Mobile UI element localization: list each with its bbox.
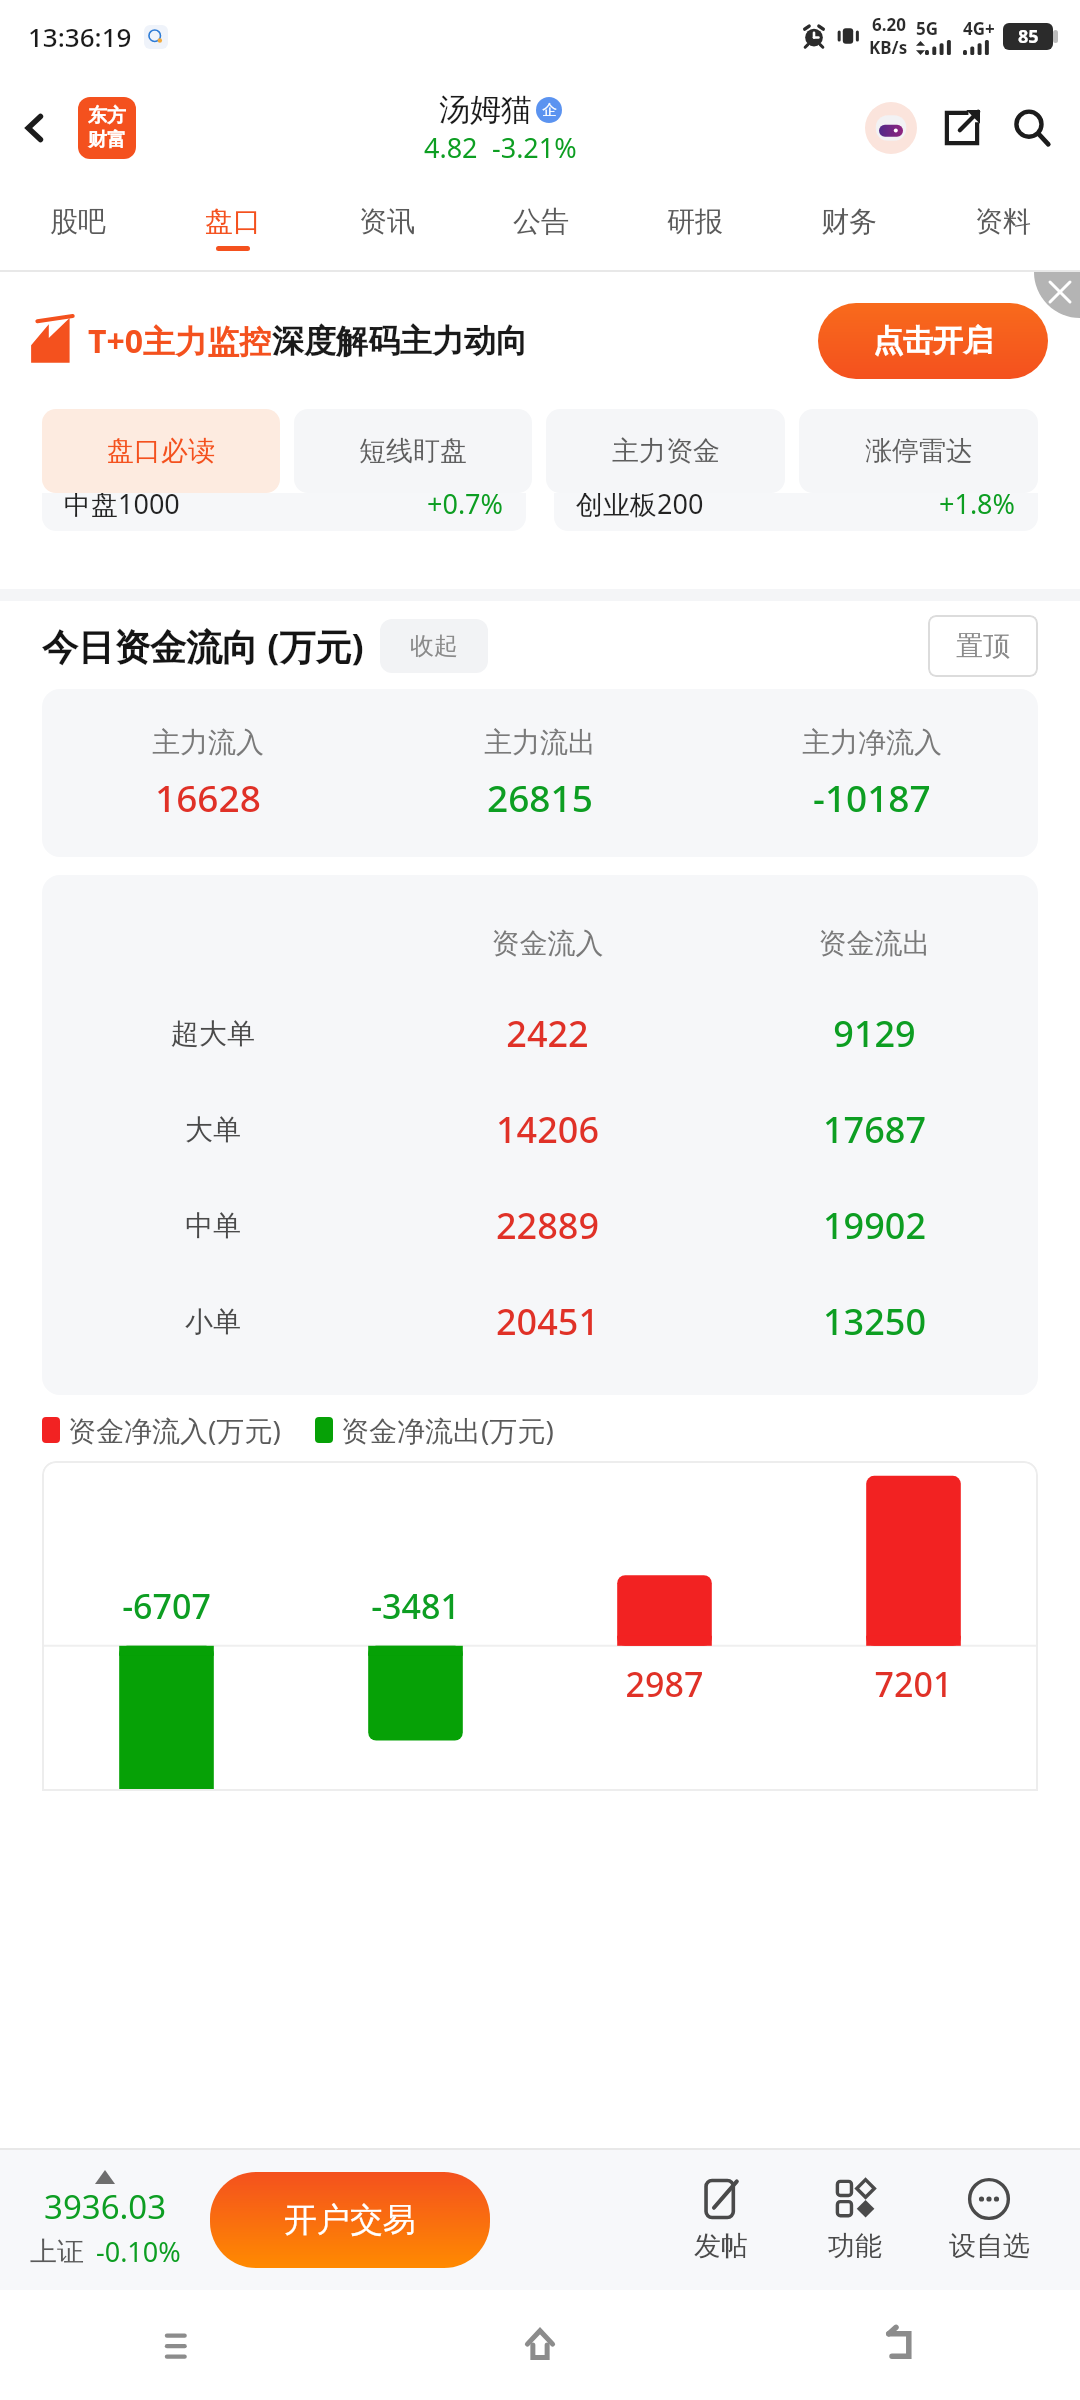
staticText: 财富 — [88, 128, 126, 152]
staticText: 3936.03 — [44, 2184, 167, 2229]
staticText: 4G+ — [963, 17, 995, 40]
button[interactable]: 点击开启 — [818, 303, 1048, 379]
staticText: 盘口必读 — [107, 434, 215, 468]
staticText: +0.7% — [427, 493, 504, 522]
button[interactable]: Home — [360, 2290, 720, 2400]
button[interactable]: Back — [720, 2290, 1080, 2400]
button[interactable]: 小单 — [42, 1273, 1038, 1369]
staticText: -3481 — [291, 1583, 540, 1629]
staticText: 主力流出 — [484, 725, 596, 760]
staticText: 小单 — [42, 1304, 384, 1339]
button[interactable]: 公告 — [464, 184, 618, 270]
staticText: 今日资金流向 (万元) — [42, 622, 364, 671]
staticText: 7201 — [789, 1661, 1038, 1707]
staticText: 盘口 — [205, 204, 261, 239]
staticText: 22889 — [384, 1201, 711, 1250]
staticText: 研报 — [667, 204, 723, 239]
button[interactable]: T+0主力监控 — [0, 272, 1080, 409]
staticText: 开户交易 — [284, 2199, 416, 2241]
staticText: 2987 — [540, 1661, 789, 1707]
staticText: 5G — [916, 17, 939, 40]
button[interactable]: 东方财富 — [78, 97, 136, 159]
button[interactable]: Close — [1034, 272, 1080, 318]
staticText: 20451 — [384, 1297, 711, 1346]
button[interactable]: 资料 — [926, 184, 1080, 270]
button[interactable]: 收起 — [380, 619, 488, 673]
staticText: 主力流入 — [152, 725, 264, 760]
staticText: 19902 — [711, 1201, 1038, 1250]
staticText: 创业板200 — [576, 493, 704, 522]
staticText: 发帖 — [694, 2229, 748, 2263]
staticText: -3.21% — [492, 129, 577, 166]
button[interactable]: AI Assistant — [862, 99, 920, 157]
button[interactable]: Recent apps — [0, 2290, 360, 2400]
staticText: 财务 — [821, 204, 877, 239]
button[interactable]: Search — [1004, 100, 1060, 156]
button[interactable]: 中盘1000 — [42, 493, 526, 531]
staticText: 2422 — [384, 1009, 711, 1058]
button[interactable]: 主力流入 — [42, 689, 1038, 857]
button[interactable]: 中单 — [42, 1177, 1038, 1273]
button[interactable]: 财务 — [772, 184, 926, 270]
staticText: 股吧 — [50, 204, 106, 239]
staticText: 东方 — [88, 104, 126, 128]
staticText: 资料 — [975, 204, 1031, 239]
button[interactable]: 主力资金 — [546, 409, 785, 493]
staticText: 大单 — [42, 1112, 384, 1147]
staticText: -10187 — [813, 772, 931, 822]
staticText: 16628 — [155, 772, 261, 822]
button[interactable]: Back — [8, 103, 62, 153]
button[interactable]: 置顶 — [928, 615, 1038, 677]
button[interactable]: 功能 — [788, 2171, 922, 2269]
staticText: 企 — [542, 101, 557, 120]
button[interactable]: 股吧 — [0, 184, 155, 270]
button[interactable]: 盘口 — [155, 184, 310, 270]
staticText: 9129 — [711, 1009, 1038, 1058]
staticText: 13250 — [711, 1297, 1038, 1346]
staticText: 主力资金 — [612, 434, 720, 468]
staticText: KB/s — [869, 36, 908, 59]
staticText: 资讯 — [359, 204, 415, 239]
staticText: 中盘1000 — [64, 493, 180, 522]
staticText: 汤姆猫 — [439, 90, 532, 129]
staticText: 置顶 — [956, 629, 1010, 663]
staticText: 涨停雷达 — [865, 434, 973, 468]
staticText: 收起 — [410, 631, 458, 661]
button[interactable]: 发帖 — [654, 2171, 788, 2269]
staticText: 主力净流入 — [802, 725, 942, 760]
staticText: 公告 — [513, 204, 569, 239]
staticText: 85 — [1018, 24, 1039, 49]
staticText: 26815 — [487, 772, 593, 822]
staticText: 资金净流入(万元) — [68, 1411, 281, 1449]
staticText: 6.20 — [872, 13, 906, 36]
button[interactable]: 超大单 — [42, 985, 1038, 1081]
button[interactable]: Share — [934, 100, 990, 156]
button[interactable]: 设自选 — [922, 2171, 1056, 2269]
button[interactable]: 3936.03 — [0, 2170, 210, 2270]
staticText: 深度解码主力动向 — [272, 321, 528, 361]
staticText: 13:36:19 — [28, 19, 132, 54]
button[interactable]: 盘口必读 — [42, 409, 280, 493]
staticText: 14206 — [384, 1105, 711, 1154]
staticText: 设自选 — [949, 2229, 1030, 2263]
button[interactable]: 短线盯盘 — [294, 409, 532, 493]
button[interactable]: 研报 — [618, 184, 772, 270]
button[interactable]: 开户交易 — [210, 2172, 490, 2268]
staticText: 17687 — [711, 1105, 1038, 1154]
staticText: -0.10% — [96, 2233, 181, 2270]
staticText: +1.8% — [939, 493, 1016, 522]
staticText: 中单 — [42, 1208, 384, 1243]
button[interactable]: 涨停雷达 — [799, 409, 1038, 493]
staticText: -6707 — [42, 1583, 291, 1629]
button[interactable]: 资讯 — [310, 184, 464, 270]
staticText: 功能 — [828, 2229, 882, 2263]
staticText: 点击开启 — [873, 322, 993, 360]
staticText: 资金流出 — [711, 926, 1038, 961]
staticText: 资金流入 — [384, 926, 711, 961]
button[interactable]: 大单 — [42, 1081, 1038, 1177]
staticText: 资金净流出(万元) — [341, 1411, 554, 1449]
button[interactable]: 创业板200 — [554, 493, 1038, 531]
staticText: T+0主力监控 — [88, 319, 272, 363]
staticText: 短线盯盘 — [359, 434, 467, 468]
staticText: 上证 — [30, 2235, 84, 2269]
